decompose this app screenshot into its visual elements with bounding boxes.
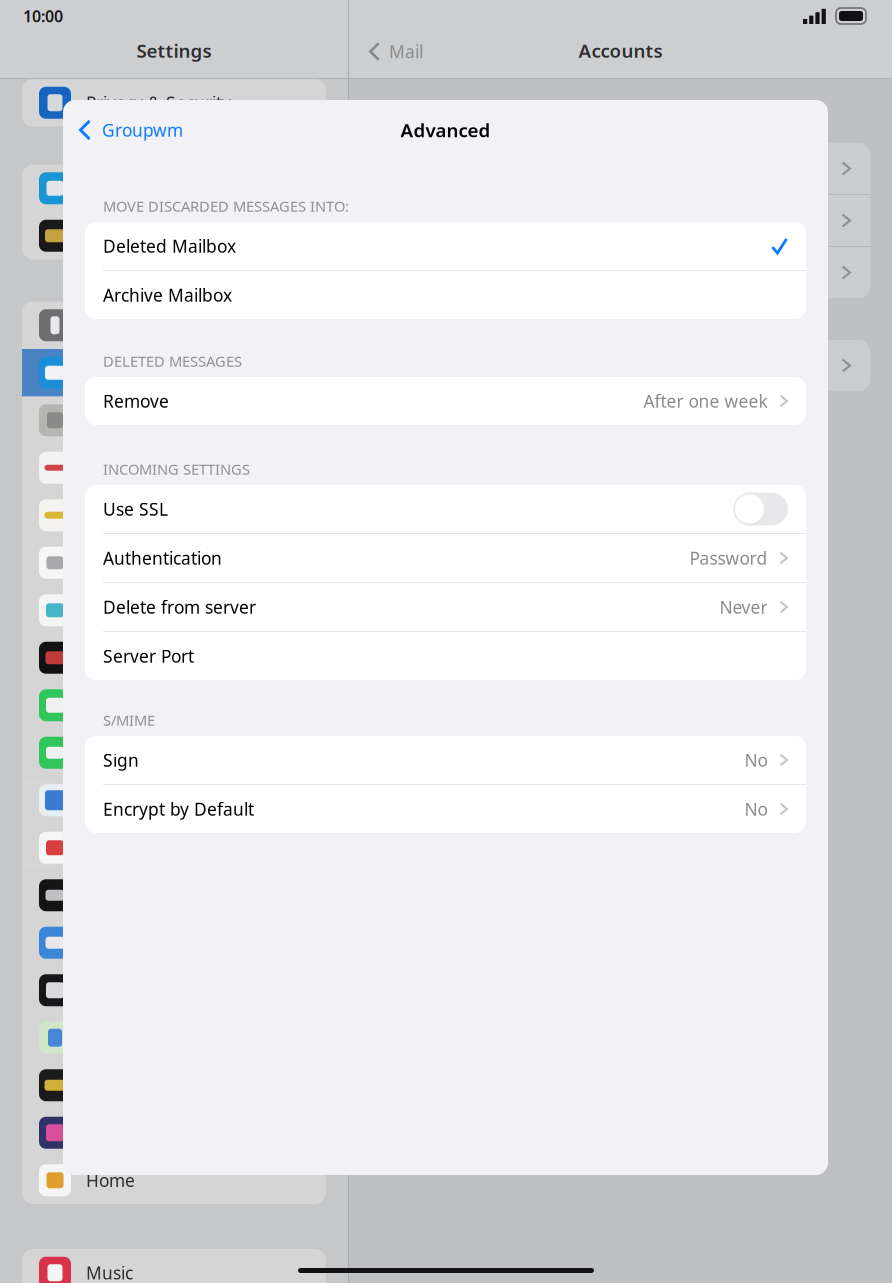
button[interactable]: Server Port [85,632,806,680]
staticText: Contacts [86,409,156,432]
staticText: Reminders [86,551,174,574]
staticText: Outlook [390,261,454,284]
button[interactable]: Stocks [22,871,326,919]
staticText: Wallet & Apple Pay [86,224,240,247]
staticText: No [744,797,767,820]
button[interactable]: Music [22,1249,326,1283]
button[interactable]: Encrypt by Default [85,785,806,833]
staticText: Voice Memos [86,646,193,669]
staticText: Mail [389,40,423,63]
button[interactable]: Reminders [22,539,326,586]
staticText: Messages [86,694,167,717]
button[interactable]: Notes [22,491,326,539]
staticText: Notes [86,504,133,527]
button[interactable]: Home [22,1156,326,1204]
button[interactable]: Shortcuts [22,1109,326,1156]
button[interactable]: App Store [22,164,326,212]
button[interactable]: FaceTime [22,729,326,776]
staticText: Calendar [86,456,160,479]
button[interactable]: Measure [22,1061,326,1109]
staticText: Archive Mailbox [103,283,232,306]
button[interactable]: Mail [22,349,326,396]
staticText: Home [86,1169,135,1192]
button[interactable]: Freeform [22,586,326,634]
button[interactable]: Deleted Mailbox [85,222,806,270]
button[interactable]: Archive Mailbox [85,271,806,319]
button[interactable]: Delete from server [85,583,806,631]
button[interactable]: Use SSL [85,485,806,533]
staticText: INCOMING SETTINGS [103,459,250,479]
staticText: No [744,748,767,771]
staticText: 10:00 [23,5,63,27]
staticText: Sign [103,748,139,771]
staticText: Delete from server [103,595,256,618]
staticText: Settings [136,38,211,63]
staticText: Deleted Mailbox [103,234,236,257]
staticText: Password [689,546,767,569]
button[interactable]: Groupwm [63,110,183,149]
button[interactable]: Contacts [22,396,326,444]
button[interactable]: News [22,824,326,871]
staticText: Music [86,1261,133,1283]
button[interactable]: Mail [349,40,423,63]
button[interactable]: Sign [85,736,806,784]
staticText: FaceTime [86,741,163,764]
staticText: Remove [103,389,169,412]
button[interactable]: Messages [22,681,326,729]
button[interactable]: Outlook [371,247,870,298]
staticText: Encrypt by Default [103,797,254,820]
staticText: Gmail [390,209,437,232]
staticText: Passwords [86,314,172,337]
button[interactable]: Wallet & Apple Pay [22,212,326,259]
staticText: MOVE DISCARDED MESSAGES INTO: [103,196,349,216]
button[interactable]: Gmail [371,195,870,246]
button[interactable]: Remove [85,377,806,425]
staticText: Never [719,595,767,618]
button[interactable]: Privacy & Security [22,79,326,126]
staticText: Safari [86,789,133,812]
staticText: Advanced [400,118,490,142]
staticText: Use SSL [103,497,168,520]
button[interactable]: Authentication [85,534,806,582]
button[interactable]: Fetch New Data [371,340,870,391]
button[interactable]: Weather [22,919,326,966]
staticText: Freeform [86,599,161,622]
staticText: After one week [643,389,767,412]
staticText: DELETED MESSAGES [103,351,242,371]
staticText: Privacy & Security [86,91,231,114]
button[interactable]: Calendar [22,444,326,491]
button[interactable]: Voice Memos [22,634,326,681]
button[interactable]: Maps [22,1014,326,1061]
button[interactable]: Safari [22,776,326,824]
button[interactable]: Translate [22,966,326,1014]
button[interactable]: Passwords [22,301,326,349]
staticText: Groupwm [102,118,183,141]
staticText: Mail [86,361,120,384]
staticText: S/MIME [103,710,155,730]
staticText: Accounts [578,38,662,63]
button[interactable]: iCloud [371,143,870,194]
staticText: Authentication [103,546,222,569]
staticText: Server Port [103,644,194,667]
